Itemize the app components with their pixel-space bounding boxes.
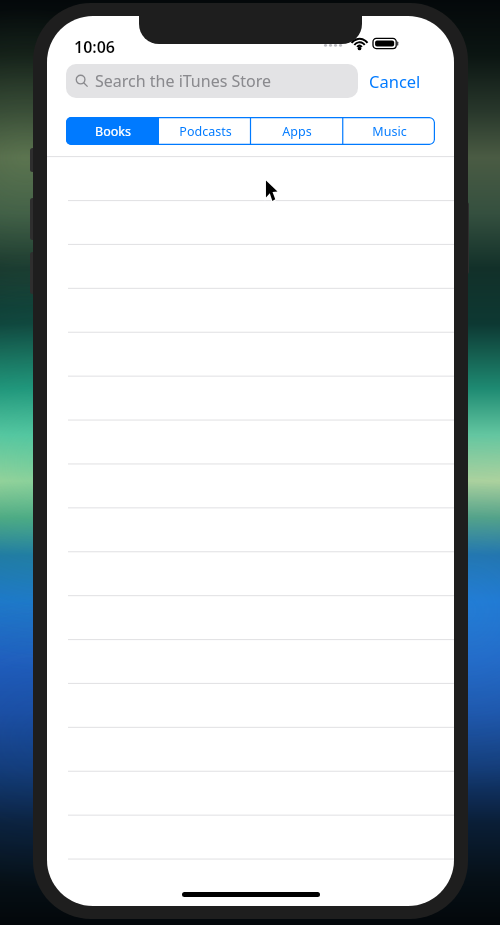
- staticText: 10:06: [74, 36, 116, 58]
- button[interactable]: Search: [66, 64, 358, 98]
- staticText: Apps: [282, 123, 312, 140]
- staticText: Music: [372, 123, 407, 140]
- button[interactable]: Apps: [251, 117, 343, 145]
- staticText: Books: [95, 123, 131, 140]
- button[interactable]: Podcasts: [159, 117, 251, 145]
- button[interactable]: Books: [66, 117, 159, 145]
- button[interactable]: Cancel: [367, 64, 423, 98]
- staticText: Search the iTunes Store: [95, 70, 272, 92]
- staticText: Cancel: [369, 70, 421, 92]
- button[interactable]: Music: [343, 117, 435, 145]
- other: Search: [75, 74, 89, 88]
- staticText: Podcasts: [179, 123, 232, 140]
